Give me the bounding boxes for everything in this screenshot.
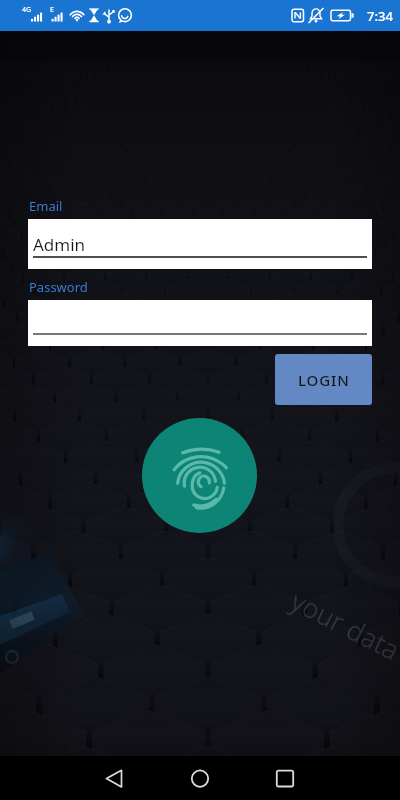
staticText: Email <box>29 197 63 215</box>
button[interactable]: Fingerprint login <box>142 418 257 533</box>
button[interactable]: LOGIN <box>275 354 372 405</box>
staticText: your data <box>285 582 400 668</box>
staticText: 7:34 <box>367 7 393 25</box>
staticText: Admin <box>33 233 86 256</box>
staticText: E <box>50 5 54 15</box>
staticText: Password <box>29 278 88 296</box>
staticText: LOGIN <box>298 370 350 390</box>
button[interactable] <box>28 300 372 346</box>
staticText: 4G <box>22 5 32 15</box>
button[interactable]: Admin <box>28 219 372 269</box>
